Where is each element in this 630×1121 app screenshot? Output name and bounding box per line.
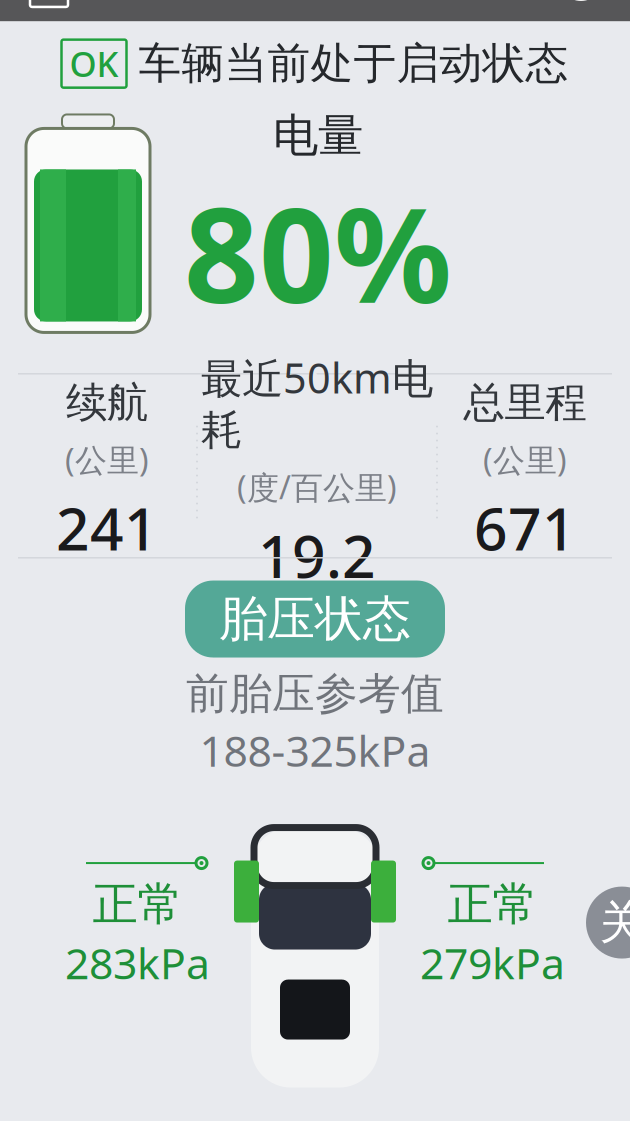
- staticText: 671: [474, 489, 576, 567]
- staticText: (公里): [65, 438, 149, 481]
- staticText: 279kPa: [420, 934, 565, 991]
- staticText: 80%: [184, 165, 452, 339]
- staticText: (度/百公里): [237, 466, 397, 508]
- staticText: 续航: [66, 377, 148, 428]
- staticText: 胎压状态: [219, 589, 411, 648]
- staticText: 283kPa: [65, 934, 210, 991]
- staticText: 电量: [273, 108, 363, 163]
- button[interactable]: Share: [18, 0, 80, 11]
- button[interactable]: 关: [586, 887, 630, 959]
- staticText: 正常: [447, 877, 537, 932]
- staticText: 前胎压参考值: [186, 667, 444, 720]
- button[interactable]: 胎压状态: [185, 580, 445, 657]
- staticText: 19.2: [258, 516, 376, 594]
- staticText: 关: [599, 895, 630, 950]
- staticText: 最近50km电耗: [201, 350, 433, 456]
- staticText: 总里程: [463, 377, 586, 428]
- staticText: 241: [56, 489, 158, 567]
- staticText: (公里): [483, 438, 567, 481]
- staticText: OK: [69, 41, 118, 87]
- staticText: ▲: [304, 363, 325, 393]
- staticText: 车辆当前处于启动状态: [138, 37, 568, 90]
- staticText: ↑: [26, 0, 71, 1]
- button[interactable]: Refresh: [550, 0, 612, 9]
- staticText: 正常: [92, 877, 182, 932]
- staticText: 188-325kPa: [199, 722, 430, 779]
